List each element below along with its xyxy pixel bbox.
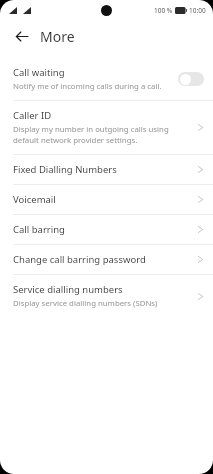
button[interactable]: Fixed Dialling Numbers	[0, 155, 213, 184]
button[interactable]: Service dialling numbers	[0, 275, 213, 317]
staticText: Fixed Dialling Numbers	[13, 163, 117, 176]
staticText: Call waiting	[13, 66, 65, 79]
staticText: Voicemail	[13, 193, 56, 206]
staticText: Display service dialling numbers (SDNs)	[13, 298, 158, 309]
staticText: Service dialling numbers	[13, 283, 123, 296]
button[interactable]: Call barring	[0, 215, 213, 244]
button[interactable]: Change call barring password	[0, 245, 213, 274]
staticText: Notify me of incoming calls during a cal…	[13, 81, 162, 92]
staticText: More	[40, 27, 75, 46]
staticText: Caller ID	[13, 109, 52, 122]
staticText: 100 %	[154, 6, 173, 15]
staticText: Display my number in outgoing calls usin…	[13, 124, 191, 146]
button[interactable]: Caller ID	[0, 101, 213, 154]
staticText: Call barring	[13, 223, 65, 236]
button[interactable]: Call waiting	[0, 58, 213, 100]
button[interactable]: Voicemail	[0, 185, 213, 214]
button[interactable]: Call waiting toggle	[178, 72, 204, 86]
staticText: 10:00	[189, 6, 206, 15]
button[interactable]: Back	[6, 21, 36, 51]
staticText: Change call barring password	[13, 253, 146, 266]
